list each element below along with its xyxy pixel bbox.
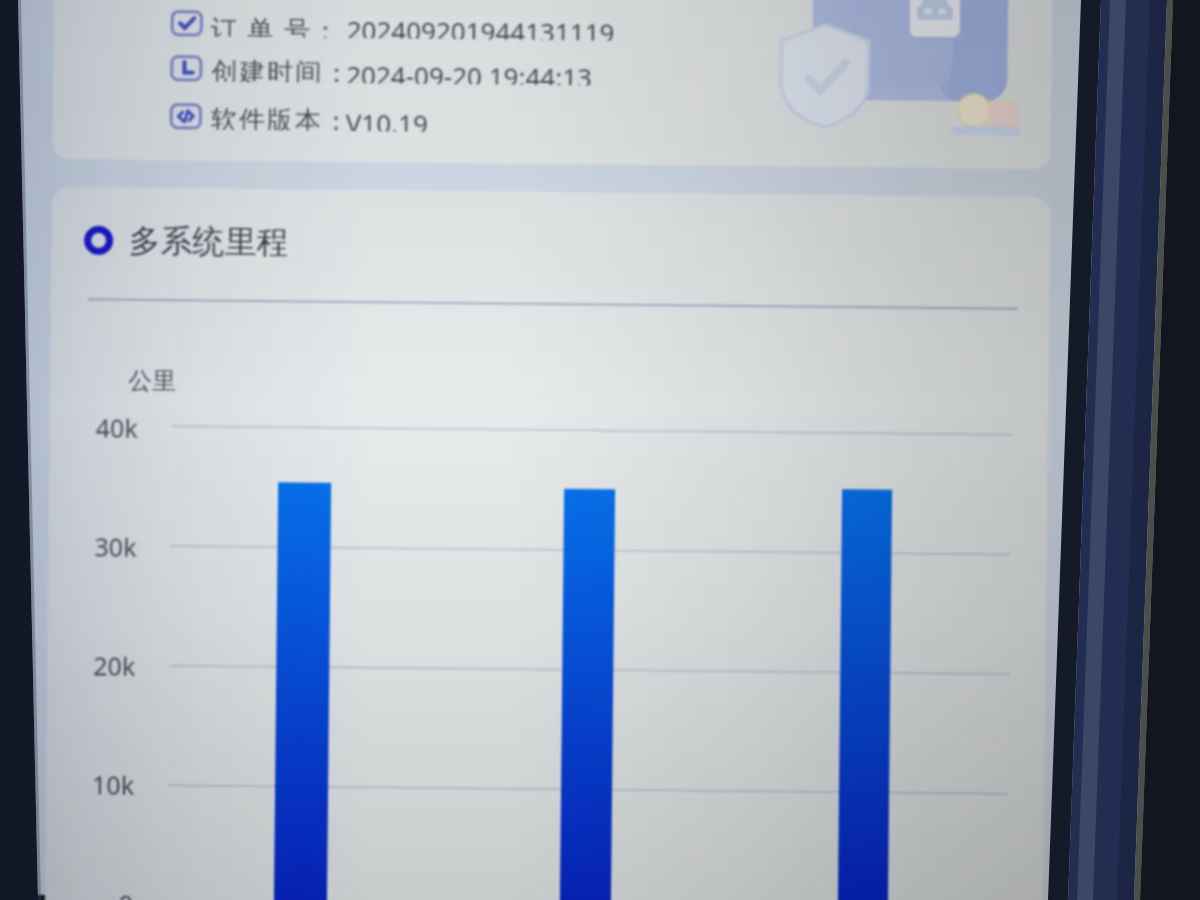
- staticText: 40k: [77, 410, 138, 445]
- staticText: 订 单 号：: [211, 10, 347, 38]
- staticText: 10k: [74, 767, 134, 802]
- staticText: 20k: [75, 648, 135, 683]
- staticText: 公里: [128, 366, 176, 396]
- staticText: 创建时间：: [210, 55, 346, 83]
- staticText: 202409201944131119: [347, 12, 615, 41]
- staticText: 多系统里程: [128, 221, 289, 262]
- staticText: 2024-09-20 19:44:13: [346, 57, 592, 85]
- staticText: 30k: [76, 529, 137, 564]
- staticText: V10.19: [346, 105, 429, 132]
- staticText: 0: [73, 886, 133, 900]
- staticText: 软件版本：: [210, 103, 346, 131]
- other: Multi-system mileage: [81, 223, 116, 258]
- button[interactable]: Multi-system mileage: [81, 215, 289, 267]
